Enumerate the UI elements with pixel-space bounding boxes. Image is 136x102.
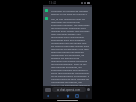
staticText: 13:42	[49, 1, 57, 5]
button[interactable]: Comment un modele de langage genere-t-il…	[45, 9, 90, 15]
button[interactable]: Forward	[55, 93, 61, 99]
staticText: Comment un modele de langage genere-t-il…	[51, 9, 90, 15]
button[interactable]: Address bar	[52, 87, 86, 92]
button[interactable]: Back	[45, 93, 51, 99]
button[interactable]: Incognito tabs	[45, 88, 51, 92]
staticText: chat.openai.com	[60, 88, 81, 92]
button[interactable]: Tabs	[74, 93, 80, 99]
button[interactable]: Oui, je suis familiarise avec les method…	[45, 17, 90, 86]
staticText: Oui, je suis familiarise avec les method…	[51, 17, 90, 86]
button[interactable]: Home	[65, 93, 71, 99]
button[interactable]: More options	[84, 93, 90, 99]
button[interactable]: Menu	[86, 87, 91, 92]
